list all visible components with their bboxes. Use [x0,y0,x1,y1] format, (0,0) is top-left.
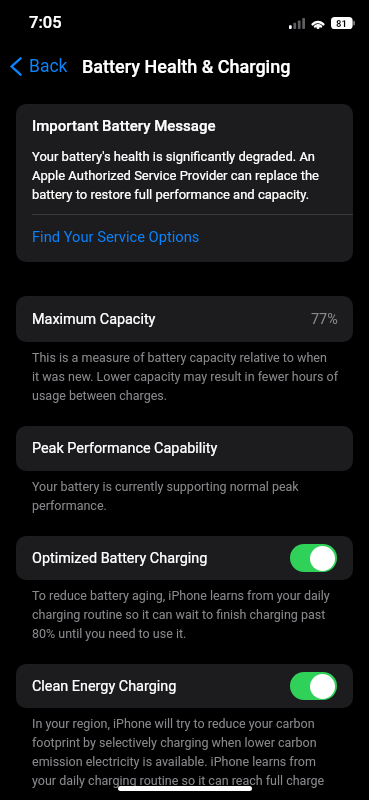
staticText: In your region, iPhone will try to reduc… [32,713,325,789]
button[interactable]: Peak Performance Capability [16,426,353,471]
staticText: 7:05 [29,13,62,32]
button[interactable]: Optimized Battery Charging [290,544,337,572]
staticText: To reduce battery aging, iPhone learns f… [32,585,330,642]
staticText: Optimized Battery Charging [32,550,208,567]
staticText: Battery Health & Charging [82,56,291,77]
staticText: Maximum Capacity [32,311,156,328]
staticText: Your battery is currently supporting nor… [32,476,299,514]
button[interactable]: Back [0,51,76,82]
button[interactable]: Optimized Battery Charging [16,536,353,580]
button[interactable]: Maximum Capacity [16,296,353,342]
staticText: This is a measure of battery capacity re… [32,347,339,404]
staticText: 77% [311,311,338,328]
staticText: Find Your Service Options [32,229,200,245]
staticText: 81 [336,18,347,29]
staticText: Your battery's health is significantly d… [32,146,319,203]
staticText: Peak Performance Capability [32,440,218,457]
button[interactable]: Find Your Service Options [16,215,353,262]
staticText: Back [29,56,68,77]
staticText: Clean Energy Charging [32,678,177,695]
button[interactable]: Clean Energy Charging [16,664,353,708]
staticText: Important Battery Message [32,117,216,135]
button[interactable]: Clean Energy Charging [290,672,337,700]
